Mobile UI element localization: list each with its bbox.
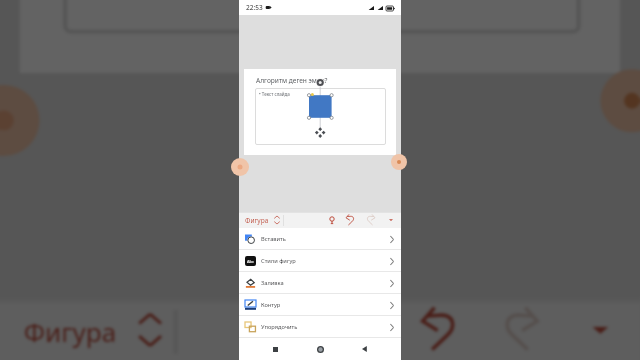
button[interactable]: Abc xyxy=(239,250,401,272)
staticText: 22:53 xyxy=(246,3,263,12)
button[interactable]: Back xyxy=(356,340,374,358)
button[interactable]: Фигура xyxy=(24,310,162,350)
button[interactable]: Help xyxy=(327,215,337,225)
button[interactable]: Home xyxy=(311,340,329,358)
button[interactable]: Help xyxy=(348,310,387,350)
staticText: Abc xyxy=(247,259,254,264)
button[interactable]: Recents xyxy=(266,340,284,358)
button[interactable]: Упорядочить xyxy=(239,316,401,338)
button[interactable]: Контур xyxy=(239,294,401,316)
staticText: Контур xyxy=(261,301,281,309)
staticText: Алгоритм деген эмне? xyxy=(256,76,328,85)
staticText: Заливка xyxy=(261,279,284,287)
staticText: Вставить xyxy=(261,235,286,243)
button[interactable]: More options xyxy=(386,215,396,225)
button[interactable]: More options xyxy=(581,310,620,350)
button[interactable]: Заливка xyxy=(239,272,401,294)
staticText: Упорядочить xyxy=(261,323,298,331)
staticText: Фигура xyxy=(24,314,118,349)
button[interactable]: Redo xyxy=(502,310,541,350)
button[interactable]: Undo xyxy=(419,310,458,350)
staticText: Стили фигур xyxy=(261,257,296,265)
button[interactable]: Фигура xyxy=(245,215,280,225)
button[interactable]: Вставить xyxy=(239,228,401,250)
staticText: • Текст слайда xyxy=(259,91,290,97)
button[interactable]: Redo xyxy=(366,215,376,225)
staticText: Фигура xyxy=(245,216,269,225)
button[interactable]: Undo xyxy=(345,215,355,225)
